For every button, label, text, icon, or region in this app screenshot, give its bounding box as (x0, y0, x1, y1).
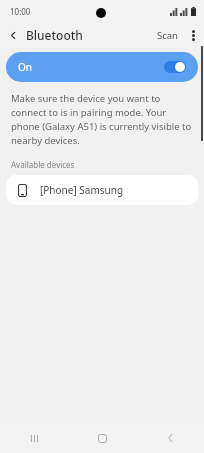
staticText: Available devices (11, 159, 75, 170)
button[interactable]: Home (68, 423, 136, 453)
button[interactable]: Recents (0, 423, 68, 453)
staticText: Make sure the device you want to connect… (11, 92, 193, 147)
staticText: Scan (157, 29, 178, 42)
staticText: [Phone] Samsung (40, 183, 124, 197)
staticText: Bluetooth (26, 27, 83, 43)
button[interactable]: Back (136, 423, 204, 453)
button[interactable]: Back (0, 22, 26, 48)
button[interactable]: More options (182, 24, 204, 46)
staticText: 10:00 (10, 6, 31, 17)
staticText: On (18, 60, 32, 74)
button[interactable]: Scan (153, 25, 182, 46)
button[interactable]: [Phone] Samsung (6, 175, 198, 205)
button[interactable]: On (6, 52, 198, 82)
